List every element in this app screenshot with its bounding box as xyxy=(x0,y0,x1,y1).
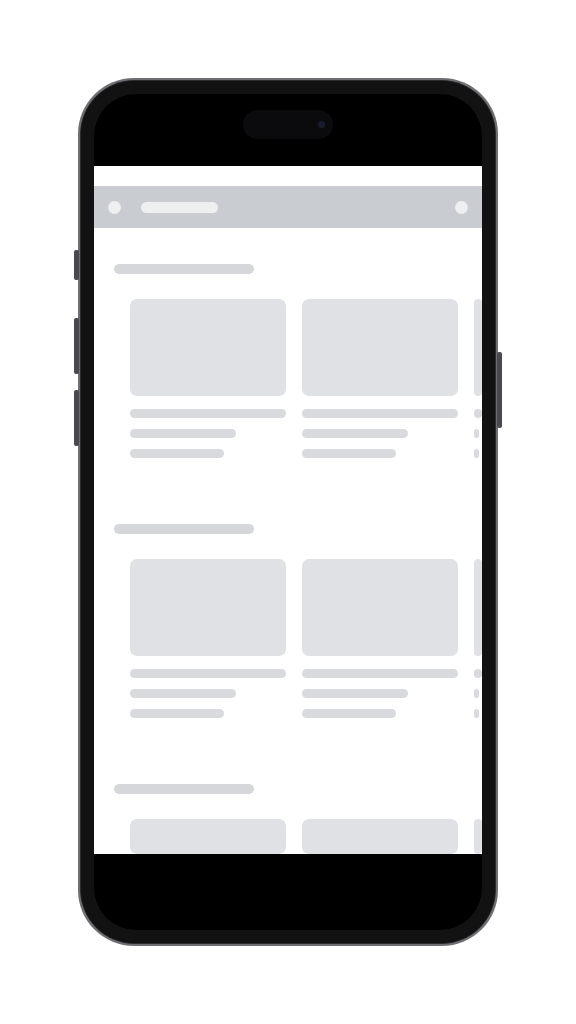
button[interactable] xyxy=(130,559,286,718)
button[interactable] xyxy=(474,559,482,718)
button[interactable] xyxy=(302,559,458,718)
button[interactable] xyxy=(302,299,458,458)
button[interactable] xyxy=(130,299,286,458)
button[interactable] xyxy=(474,299,482,458)
button[interactable] xyxy=(474,819,482,854)
button[interactable]: Account xyxy=(455,201,468,214)
button[interactable]: Menu xyxy=(108,201,121,214)
button[interactable]: Menu xyxy=(94,186,482,228)
